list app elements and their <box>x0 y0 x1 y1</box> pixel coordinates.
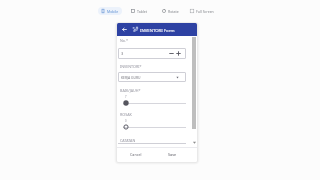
staticText: No.* <box>120 38 129 43</box>
staticText: CATATAN <box>120 138 136 143</box>
staticText: Cancel <box>130 152 142 157</box>
staticText: Tablet <box>137 9 147 14</box>
button[interactable]: Tablet <box>128 7 150 15</box>
staticText: Mobile <box>107 9 119 14</box>
button[interactable]: Slider <box>123 124 129 130</box>
button[interactable]: KERJA GURU <box>118 72 186 82</box>
staticText: 3 <box>121 51 124 56</box>
button[interactable]: Save <box>154 148 191 161</box>
staticText: Rotate <box>168 9 179 14</box>
button[interactable]: Increase <box>175 50 182 57</box>
staticText: 7 <box>125 95 127 99</box>
button[interactable]: Mobile <box>98 7 122 15</box>
staticText: BAIK/JAUH* <box>120 88 141 93</box>
button[interactable]: Back <box>121 26 128 33</box>
staticText: Full Screen <box>196 9 214 14</box>
staticText: Save <box>168 152 177 157</box>
staticText: 0 <box>125 119 127 123</box>
button[interactable]: Full Screen <box>187 7 217 15</box>
button[interactable]: Slider <box>123 100 129 106</box>
staticText: KERJA GURU <box>121 75 141 80</box>
button[interactable]: Rotate <box>159 7 182 15</box>
button[interactable]: Cancel <box>117 148 154 161</box>
button[interactable]: 3 <box>118 48 186 59</box>
staticText: ROSAK <box>120 112 132 117</box>
button[interactable]: App logo <box>132 26 139 33</box>
staticText: INVENTORI* <box>120 64 142 69</box>
button[interactable]: Decrease <box>168 50 175 57</box>
staticText: INVENTORI Form <box>140 27 175 33</box>
